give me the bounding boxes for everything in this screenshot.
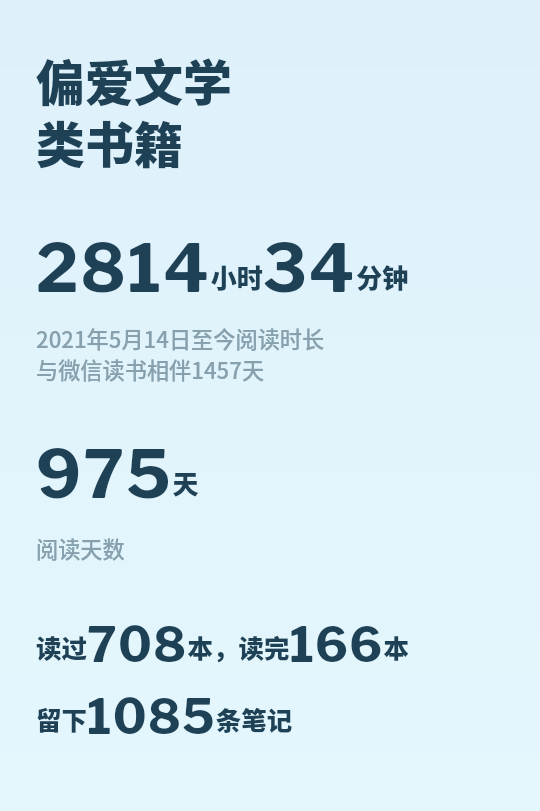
staticText: 2021年5月14日至今阅读时长 与微信读书相伴1457天: [36, 322, 325, 385]
staticText: 975天: [36, 434, 199, 514]
button[interactable]: 975天: [36, 434, 199, 514]
staticText: 读过708本，读完166本: [36, 616, 409, 674]
button[interactable]: 2814小时34分钟: [36, 228, 409, 308]
button[interactable]: 留下1085条笔记: [36, 688, 293, 746]
staticText: 阅读天数: [36, 532, 125, 564]
staticText: 2814小时34分钟: [36, 228, 409, 308]
button[interactable]: 偏爱文学类书籍: [36, 44, 233, 177]
staticText: 偏爱文学 类书籍: [36, 44, 233, 177]
button[interactable]: 读过708本，读完166本: [36, 616, 409, 674]
button[interactable]: 2021年5月14日至今阅读时长 与微信读书相伴1457天: [36, 322, 325, 385]
staticText: 留下1085条笔记: [36, 688, 293, 746]
button[interactable]: 阅读天数: [36, 532, 125, 564]
